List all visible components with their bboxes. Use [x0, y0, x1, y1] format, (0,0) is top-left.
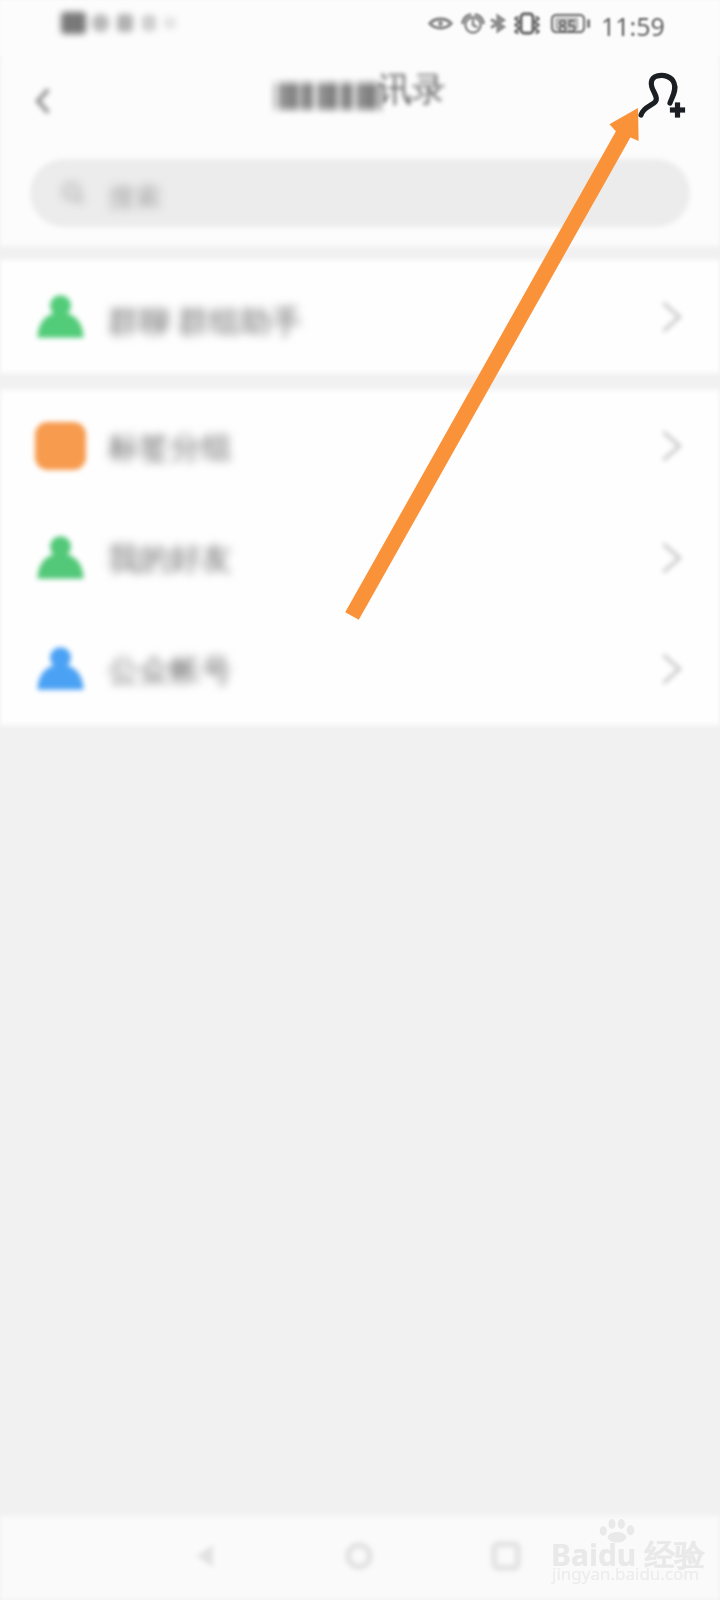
button[interactable]: Back	[12, 70, 74, 132]
staticText: 标签分组	[108, 428, 232, 467]
staticText: 公众帐号	[108, 651, 232, 690]
staticText: 搜索	[109, 181, 161, 214]
button[interactable]	[0, 502, 720, 613]
button[interactable]: Back	[168, 1519, 242, 1593]
button[interactable]	[30, 159, 690, 227]
button[interactable]	[0, 613, 720, 725]
button[interactable]: Add contact	[632, 66, 694, 126]
staticText: 11:59	[601, 9, 665, 43]
button[interactable]: Recents	[469, 1519, 543, 1593]
button[interactable]	[0, 390, 720, 502]
staticText: 85	[558, 15, 577, 37]
staticText: 我的好友	[108, 539, 232, 578]
staticText: Baidu 经验	[551, 1534, 705, 1575]
staticText: 讯录	[378, 68, 446, 111]
staticText: jingyan.baidu.com	[552, 1562, 700, 1585]
staticText: 群聊 群组助手	[108, 299, 303, 341]
button[interactable]: Home	[322, 1519, 396, 1593]
button[interactable]	[0, 260, 720, 373]
